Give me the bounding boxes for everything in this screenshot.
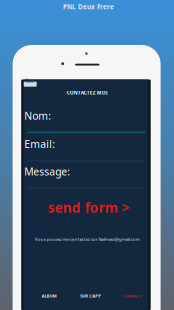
- button[interactable]: CONTACT: [111, 291, 153, 301]
- staticText: CONTACTEZ MOI: [67, 89, 108, 96]
- staticText: Message:: [24, 164, 70, 179]
- staticText: SUR L'APP: [80, 293, 101, 299]
- button[interactable]: Retour: [24, 82, 37, 87]
- staticText: Vous pouvez me contactez sur faelmass@gm…: [35, 236, 140, 242]
- staticText: CONTACT: [123, 293, 142, 299]
- button[interactable]: SUR L'APP: [70, 291, 111, 301]
- staticText: PNL Deux Frere: [63, 3, 114, 11]
- staticText: Email:: [24, 137, 55, 151]
- staticText: send form >: [48, 198, 130, 217]
- staticText: Retour: [25, 77, 35, 91]
- button[interactable]: send form >: [27, 198, 151, 217]
- staticText: Nom:: [24, 109, 51, 123]
- staticText: ALBUM: [42, 293, 57, 299]
- button[interactable]: ALBUM: [28, 291, 70, 301]
